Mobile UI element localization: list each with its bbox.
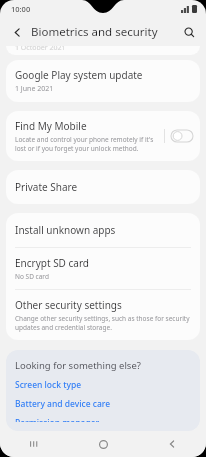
button[interactable]: Search <box>178 21 200 43</box>
button[interactable]: Install unknown apps <box>6 213 200 247</box>
staticText: Biometrics and security <box>31 24 158 40</box>
staticText: Install unknown apps <box>15 223 116 237</box>
button[interactable]: Home <box>91 432 115 456</box>
staticText: 1 October 2021 <box>15 46 66 52</box>
staticText: 10:00 <box>11 4 31 14</box>
button[interactable]: 1 October 2021 <box>6 46 200 55</box>
staticText: Looking for something else? <box>15 359 141 372</box>
staticText: Battery and device care <box>15 398 111 410</box>
staticText: Other security settings <box>15 298 122 312</box>
staticText: Change other security settings, such as … <box>15 314 190 332</box>
staticText: Locate and control your phone remotely i… <box>15 135 154 153</box>
staticText: Google Play system update <box>15 68 143 82</box>
button[interactable]: Private Share <box>6 170 200 204</box>
button[interactable]: Permission manager <box>15 417 191 422</box>
staticText: Private Share <box>15 180 78 194</box>
staticText: No SD card <box>15 272 49 281</box>
button[interactable]: Encrypt SD card <box>6 248 200 289</box>
button[interactable]: Find My Mobile toggle <box>171 130 193 142</box>
button[interactable]: Battery and device care <box>15 398 191 410</box>
button[interactable]: Google Play system update <box>6 60 200 102</box>
staticText: Permission manager <box>15 417 100 422</box>
button[interactable]: Recents <box>22 432 46 456</box>
button[interactable]: Screen lock type <box>15 379 191 391</box>
staticText: 1 June 2021 <box>15 84 54 94</box>
staticText: Encrypt SD card <box>15 256 90 270</box>
staticText: Screen lock type <box>15 379 82 391</box>
button[interactable]: Other security settings <box>6 290 200 340</box>
button[interactable]: Back <box>6 21 28 43</box>
staticText: Find My Mobile <box>15 119 87 133</box>
button[interactable]: Find My Mobile <box>6 111 200 161</box>
button[interactable]: Back <box>160 432 184 456</box>
